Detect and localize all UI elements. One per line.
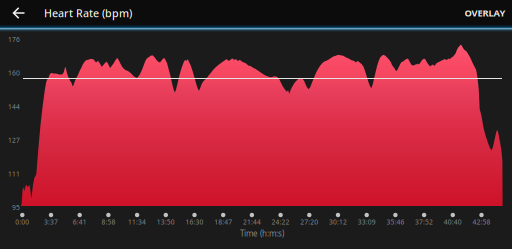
staticText: 3:37 <box>44 217 58 226</box>
button[interactable]: OVERLAY <box>461 0 509 26</box>
staticText: 33:09 <box>358 217 376 226</box>
staticText: 37:52 <box>415 217 433 226</box>
staticText: 8:58 <box>101 217 115 226</box>
staticText: 27:20 <box>300 217 318 226</box>
staticText: 11:34 <box>128 217 146 226</box>
staticText: 42:58 <box>472 217 490 226</box>
staticText: Heart Rate (bpm) <box>44 6 132 20</box>
staticText: 24:22 <box>272 217 290 226</box>
staticText: 21:44 <box>243 217 261 226</box>
staticText: 160 <box>8 69 20 77</box>
staticText: 0:00 <box>15 217 29 226</box>
staticText: 6:41 <box>73 217 87 226</box>
button[interactable]: Back <box>6 0 32 26</box>
staticText: 30:12 <box>329 217 347 226</box>
staticText: 16:30 <box>185 217 203 226</box>
staticText: 13:50 <box>157 217 175 226</box>
staticText: 35:46 <box>386 217 404 226</box>
staticText: Time (h:m:s) <box>240 228 284 239</box>
staticText: OVERLAY <box>464 7 505 19</box>
staticText: 18:47 <box>214 217 232 226</box>
staticText: 176 <box>8 35 20 44</box>
staticText: 127 <box>8 136 20 145</box>
staticText: 144 <box>8 102 20 111</box>
staticText: 40:40 <box>444 217 462 226</box>
staticText: 111 <box>8 169 20 178</box>
staticText: 95 <box>12 203 20 212</box>
